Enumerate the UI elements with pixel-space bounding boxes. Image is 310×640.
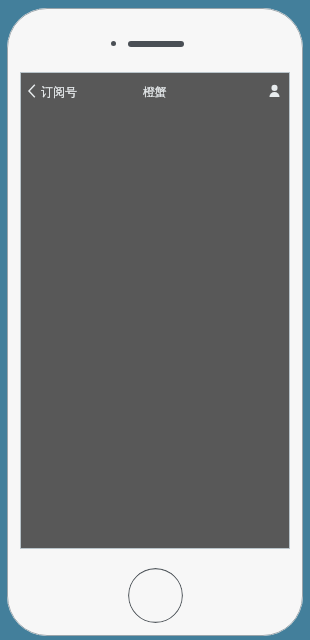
staticText: 橙蟹 (143, 84, 167, 99)
button[interactable]: 订阅号 (20, 72, 87, 110)
button[interactable]: Profile (258, 72, 290, 110)
staticText: 订阅号 (41, 84, 77, 99)
button[interactable]: Home (128, 568, 183, 623)
